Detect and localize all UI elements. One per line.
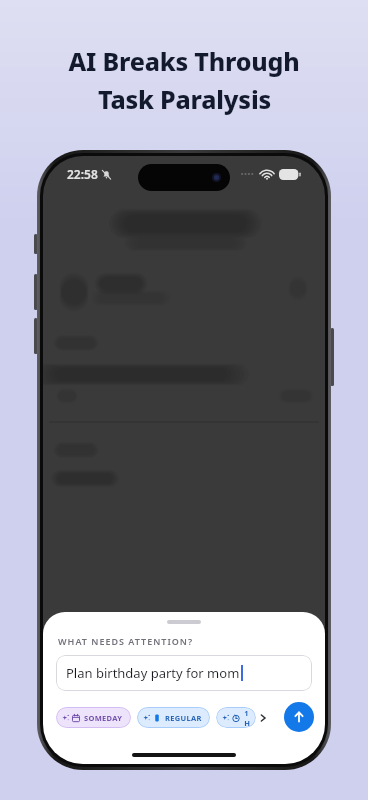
staticText: 1H [244, 708, 248, 728]
staticText: AI Breaks Through [68, 44, 300, 78]
button[interactable]: REGULAR [137, 707, 210, 728]
staticText: Plan birthday party for mom [66, 664, 240, 682]
staticText: SOMEDAY [84, 713, 123, 723]
button[interactable]: 1H [216, 707, 256, 728]
staticText: WHAT NEEDS ATTENTION? [58, 635, 194, 647]
other: More options [258, 713, 268, 723]
button[interactable]: Plan birthday party for mom [56, 655, 312, 691]
staticText: REGULAR [165, 713, 202, 723]
staticText: 22:58 [67, 166, 98, 182]
staticText: Task Paralysis [98, 82, 271, 116]
button[interactable]: Send [284, 702, 314, 732]
button[interactable]: SOMEDAY [56, 707, 131, 728]
